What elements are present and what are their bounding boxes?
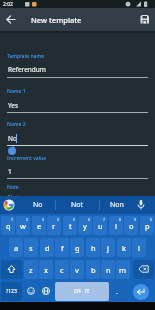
button[interactable]: EN · IT (55, 282, 109, 301)
button[interactable]: No (20, 196, 55, 214)
button[interactable]: z (24, 260, 38, 279)
button[interactable] (126, 282, 155, 301)
button[interactable]: b (86, 260, 100, 279)
staticText: . (116, 287, 118, 297)
button[interactable]: n (101, 260, 115, 279)
button[interactable]: e (32, 216, 46, 235)
staticText: g (75, 243, 80, 253)
button[interactable] (0, 8, 20, 31)
staticText: Increment value (7, 155, 47, 162)
button[interactable]: w (16, 216, 30, 235)
staticText: y (83, 221, 87, 231)
button[interactable]: g (70, 238, 84, 257)
button[interactable]: u (93, 216, 107, 235)
button[interactable]: . (110, 282, 124, 301)
staticText: 7 (103, 217, 106, 222)
button[interactable]: y (78, 216, 92, 235)
button[interactable]: m (116, 260, 130, 279)
button[interactable]: Non (100, 196, 134, 214)
staticText: t (69, 221, 72, 231)
button[interactable]: p (140, 216, 154, 235)
staticText: u (98, 221, 103, 231)
button[interactable]: t (63, 216, 77, 235)
button[interactable]: x (39, 260, 53, 279)
staticText: i (115, 221, 117, 231)
staticText: Name 2 (7, 121, 26, 128)
button[interactable]: o (124, 216, 138, 235)
staticText: 4 (57, 217, 60, 222)
staticText: s (29, 243, 33, 253)
button[interactable] (24, 282, 38, 301)
button[interactable]: ?123 (1, 282, 22, 301)
staticText: Yes (8, 101, 19, 110)
staticText: c (60, 265, 64, 275)
button[interactable]: j (101, 238, 115, 257)
button[interactable] (1, 260, 22, 279)
staticText: 5 (73, 217, 76, 222)
staticText: Template name (7, 53, 45, 60)
button[interactable] (39, 282, 53, 301)
button[interactable] (133, 196, 155, 214)
button[interactable]: v (70, 260, 84, 279)
staticText: EN · IT (74, 288, 90, 295)
staticText: 1 (11, 217, 14, 222)
staticText: 3 (42, 217, 45, 222)
staticText: ?123 (6, 288, 17, 295)
button[interactable]: Not (56, 196, 99, 214)
staticText: 8 (119, 217, 122, 222)
button[interactable]: q (1, 216, 15, 235)
staticText: Note (8, 193, 22, 201)
staticText: d (45, 243, 50, 253)
staticText: m (119, 265, 127, 275)
staticText: No (8, 134, 17, 143)
staticText: No (33, 200, 43, 210)
button[interactable] (134, 8, 155, 31)
staticText: Referendum (8, 65, 46, 74)
staticText: Name 1 (7, 88, 26, 95)
staticText: 2:02 (3, 1, 13, 8)
staticText: o (129, 221, 134, 231)
staticText: Non (110, 200, 124, 210)
staticText: j (107, 243, 109, 253)
button[interactable]: a (9, 238, 23, 257)
staticText: p (145, 221, 150, 231)
button[interactable]: l (132, 238, 146, 257)
staticText: e (37, 221, 42, 231)
button[interactable]: k (117, 238, 131, 257)
staticText: n (106, 265, 111, 275)
staticText: a (14, 243, 19, 253)
button[interactable]: c (55, 260, 69, 279)
staticText: r (52, 221, 56, 231)
button[interactable]: d (40, 238, 54, 257)
staticText: 0 (150, 217, 153, 222)
staticText: l (138, 243, 140, 253)
staticText: b (91, 265, 96, 275)
staticText: 1 (8, 167, 12, 176)
button[interactable]: h (86, 238, 100, 257)
button[interactable] (133, 260, 154, 279)
button[interactable]: i (109, 216, 123, 235)
staticText: f (61, 243, 64, 253)
button[interactable]: r (47, 216, 61, 235)
staticText: 6 (88, 217, 91, 222)
staticText: h (91, 243, 96, 253)
staticText: x (44, 265, 48, 275)
staticText: k (122, 243, 127, 253)
staticText: q (6, 221, 11, 231)
staticText: Note (7, 184, 19, 191)
button[interactable]: f (55, 238, 69, 257)
staticText: 9 (134, 217, 137, 222)
staticText: v (75, 265, 79, 275)
button[interactable]: s (24, 238, 38, 257)
staticText: New template (31, 15, 82, 25)
staticText: 2 (26, 217, 29, 222)
staticText: Not (71, 200, 84, 210)
staticText: w (20, 221, 26, 231)
staticText: z (29, 265, 33, 275)
